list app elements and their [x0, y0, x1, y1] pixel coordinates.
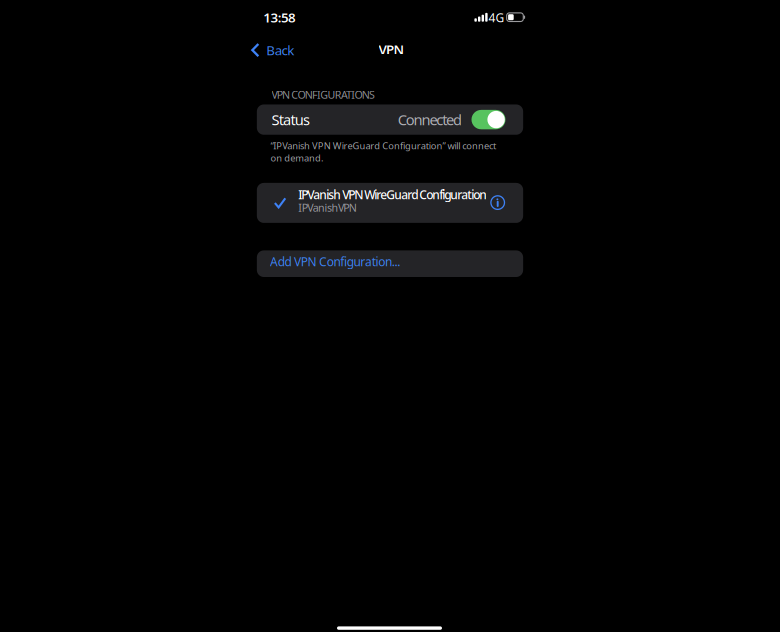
staticText: Connected	[398, 110, 462, 129]
staticText: IPVanishVPN	[298, 200, 357, 215]
staticText: VPN CONFIGURATIONS	[271, 88, 375, 102]
button[interactable]: Add VPN Configuration...	[257, 250, 523, 277]
button[interactable]: IPVanish VPN WireGuard Configuration	[257, 183, 523, 223]
staticText: 4G	[489, 9, 505, 25]
staticText: VPN	[378, 40, 404, 58]
staticText: Back	[266, 41, 294, 59]
staticText: “IPVanish VPN WireGuard Configuration” w…	[270, 139, 496, 152]
staticText: IPVanish VPN WireGuard Configuration	[298, 186, 487, 202]
button[interactable]: Status	[257, 104, 523, 135]
staticText: Add VPN Configuration...	[270, 254, 400, 270]
button[interactable]: Back	[251, 41, 294, 59]
staticText: 13:58	[263, 8, 296, 26]
staticText: on demand.	[270, 152, 324, 164]
staticText: Status	[271, 110, 310, 129]
